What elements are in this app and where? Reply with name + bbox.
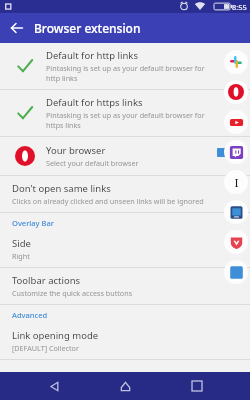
button[interactable]: Twitch (224, 140, 248, 164)
button[interactable]: Instapaper (224, 170, 248, 194)
staticText: I (234, 175, 239, 190)
staticText: Default for https links (46, 96, 143, 109)
button[interactable]: Toolbar actions (0, 268, 250, 304)
staticText: Pintasking is set up as your default bro… (46, 63, 210, 83)
staticText: Toolbar actions (12, 274, 81, 287)
button[interactable]: Side (0, 229, 250, 267)
staticText: Don't open same links (12, 182, 111, 195)
button[interactable]: Link opening mode (0, 321, 250, 359)
button[interactable]: Slack (224, 50, 248, 74)
button[interactable]: Vivaldi (224, 230, 248, 254)
staticText: Side (12, 237, 31, 250)
button[interactable]: Back (36, 372, 72, 400)
staticText: Clicks on already clicked and unseen lin… (12, 196, 204, 206)
staticText: Overlay Bar (12, 218, 54, 228)
staticText: Advanced (12, 310, 48, 320)
button[interactable]: Don't open same links (0, 176, 250, 212)
button[interactable]: Default for http links (0, 43, 250, 89)
staticText: Your browser (46, 144, 106, 157)
button[interactable]: Default for https links (0, 90, 250, 136)
button[interactable]: Opera (224, 80, 248, 104)
button[interactable]: Home (107, 372, 143, 400)
staticText: Customize the quick access buttons (12, 288, 133, 298)
button[interactable]: Pocket casts (224, 200, 248, 224)
staticText: [DEFAULT] Collector (12, 343, 79, 353)
button[interactable]: Back (0, 13, 34, 43)
staticText: Right (12, 251, 30, 261)
staticText: Select your default browser (46, 158, 139, 168)
staticText: Browser extension (34, 20, 141, 36)
button[interactable]: Recent apps (179, 372, 215, 400)
button[interactable]: YouTube (224, 110, 248, 134)
staticText: Default for http links (46, 49, 138, 62)
button[interactable]: Bing (224, 260, 248, 284)
staticText: Link opening mode (12, 329, 99, 342)
staticText: 8:55 (232, 2, 247, 12)
staticText: Pintasking is set up as your default bro… (46, 110, 210, 130)
button[interactable]: Your browser (0, 137, 250, 175)
